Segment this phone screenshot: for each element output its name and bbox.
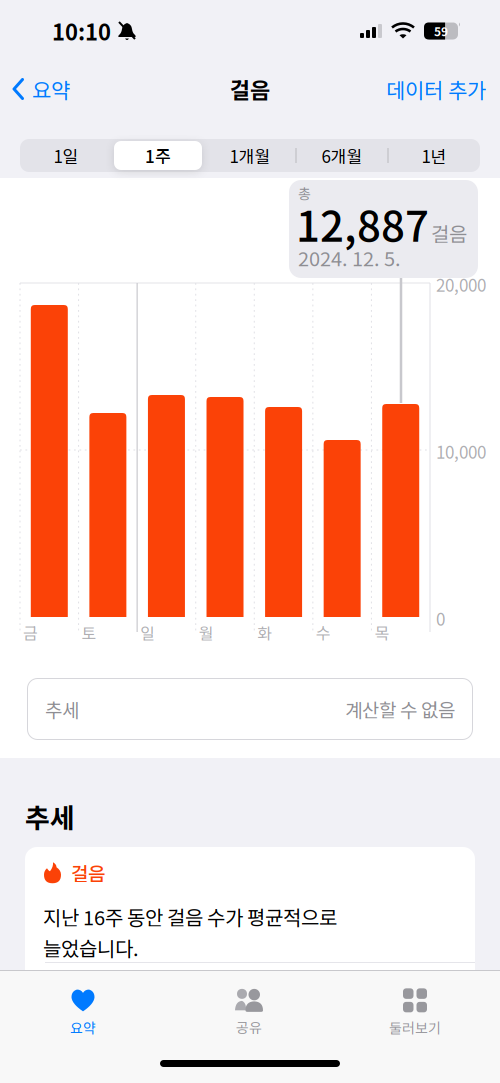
staticText: 10:10	[52, 15, 111, 47]
button[interactable]: 추세	[27, 678, 473, 740]
button[interactable]: 걸음	[25, 847, 475, 1010]
staticText: 월	[199, 621, 214, 644]
staticText: 늘었습니다.	[43, 933, 139, 962]
staticText: 10,000	[436, 439, 486, 464]
staticText: 총	[298, 183, 311, 203]
staticText: 걸음	[230, 73, 270, 105]
button[interactable]: 1년	[388, 139, 480, 172]
staticText: 1일	[53, 143, 78, 168]
staticText: 수	[316, 621, 331, 644]
staticText: 0	[436, 606, 445, 631]
staticText: 1년	[421, 143, 446, 168]
staticText: 걸음	[431, 218, 467, 247]
staticText: 요약	[32, 74, 70, 104]
staticText: 금	[23, 621, 38, 644]
staticText: 걸음	[71, 859, 105, 886]
staticText: 화	[257, 621, 272, 644]
button[interactable]: 1개월	[204, 139, 296, 172]
staticText: 일	[140, 621, 155, 644]
button[interactable]: 공유	[166, 982, 332, 1044]
staticText: 데이터 추가	[386, 74, 486, 104]
staticText: 지난 16주 동안 걸음 수가 평균적으로	[43, 902, 337, 931]
button[interactable]: 1일	[20, 139, 112, 172]
staticText: 목	[374, 621, 389, 644]
staticText: 12,887	[296, 193, 429, 254]
staticText: 요약	[70, 1017, 96, 1038]
staticText: 59	[434, 22, 448, 40]
staticText: 1주	[145, 143, 171, 168]
staticText: 토	[82, 621, 97, 644]
button[interactable]: 요약	[12, 74, 70, 104]
staticText: 둘러보기	[389, 1017, 441, 1038]
staticText: 1개월	[229, 143, 270, 168]
button[interactable]: 데이터 추가	[386, 74, 486, 104]
staticText: 추세	[25, 797, 75, 836]
button[interactable]: 1주	[112, 139, 204, 172]
staticText: 2024. 12. 5.	[298, 243, 401, 272]
button[interactable]: 6개월	[296, 139, 388, 172]
staticText: 공유	[236, 1017, 262, 1037]
staticText: 추세	[45, 695, 79, 723]
staticText: 6개월	[321, 143, 362, 168]
staticText: 계산할 수 없음	[345, 695, 455, 723]
button[interactable]: 요약	[0, 982, 166, 1044]
staticText: 20,000	[436, 272, 486, 297]
button[interactable]: 둘러보기	[332, 982, 498, 1044]
